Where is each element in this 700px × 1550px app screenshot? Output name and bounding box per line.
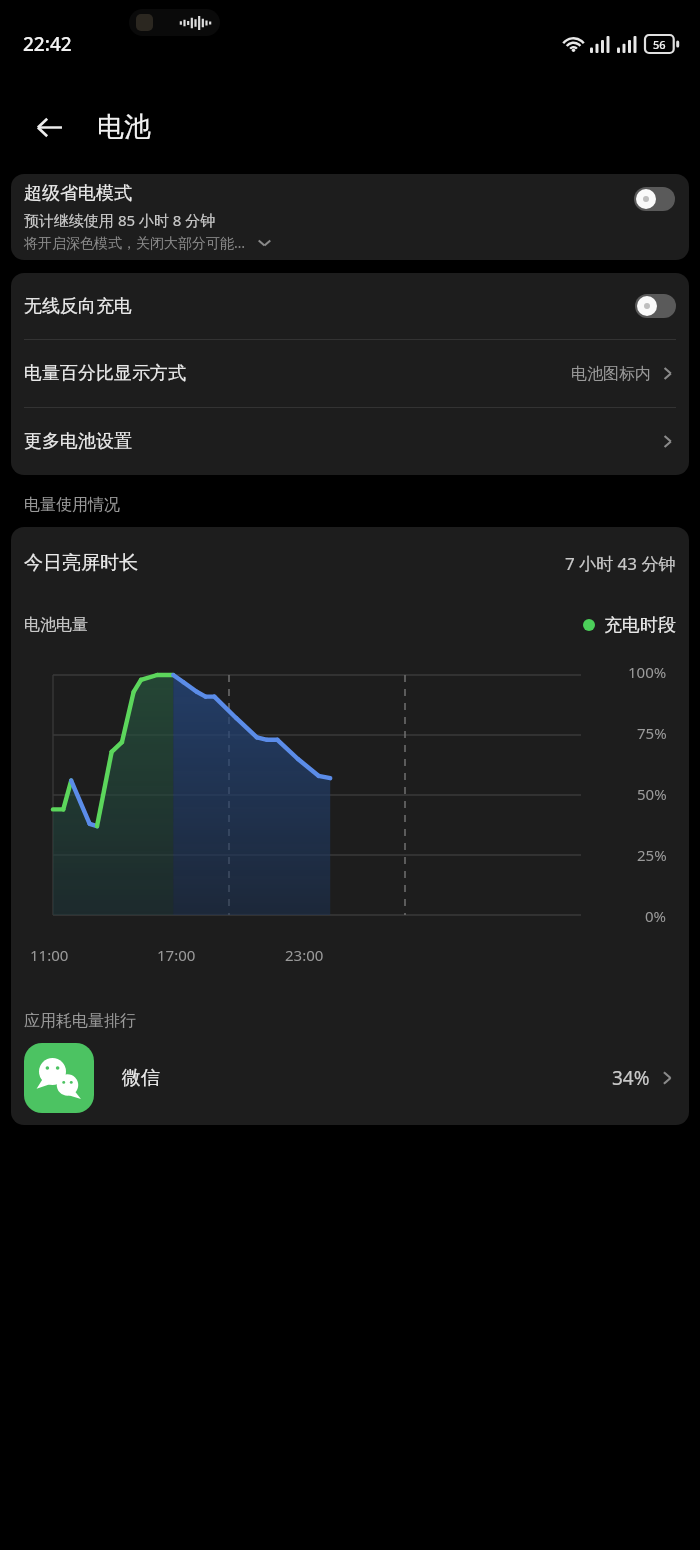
button[interactable]: 超级省电模式 <box>11 174 689 260</box>
staticText: 充电时段 <box>604 614 676 637</box>
staticText: 无线反向充电 <box>24 295 132 318</box>
staticText: 应用耗电量排行 <box>24 1011 136 1031</box>
staticText: 今日亮屏时长 <box>24 551 138 575</box>
staticText: 电池 <box>97 110 151 144</box>
staticText: 电池图标内 <box>571 364 651 384</box>
staticText: 50% <box>637 784 667 804</box>
button[interactable]: 电量百分比显示方式 <box>11 340 689 407</box>
staticText: 100% <box>628 662 667 682</box>
staticText: 23:00 <box>285 945 324 965</box>
staticText: 微信 <box>122 1066 160 1090</box>
staticText: 7 小时 43 分钟 <box>565 552 676 575</box>
staticText: 超级省电模式 <box>24 182 132 205</box>
button[interactable]: 更多电池设置 <box>11 408 689 475</box>
staticText: 0% <box>645 906 667 926</box>
staticText: 预计继续使用 85 小时 8 分钟 <box>24 210 216 230</box>
staticText: 电量使用情况 <box>24 495 120 515</box>
staticText: 11:00 <box>30 945 69 965</box>
staticText: 更多电池设置 <box>24 430 132 453</box>
button[interactable]: Back <box>26 104 72 150</box>
staticText: 25% <box>637 845 667 865</box>
staticText: 75% <box>637 723 667 743</box>
staticText: 34% <box>612 1065 650 1091</box>
staticText: 电量百分比显示方式 <box>24 362 186 385</box>
staticText: 22:42 <box>23 31 72 57</box>
button[interactable]: 微信 <box>11 1031 689 1125</box>
button[interactable]: 今日亮屏时长 <box>11 527 689 599</box>
button[interactable]: 无线反向充电 <box>11 273 689 339</box>
staticText: 56 <box>653 37 666 52</box>
staticText: 将开启深色模式，关闭大部分可能… <box>24 233 246 252</box>
other: 无线反向充电开关 <box>635 294 676 318</box>
staticText: 电池电量 <box>24 615 88 635</box>
staticText: 17:00 <box>157 945 196 965</box>
button[interactable]: 超级省电模式开关 <box>634 187 675 211</box>
